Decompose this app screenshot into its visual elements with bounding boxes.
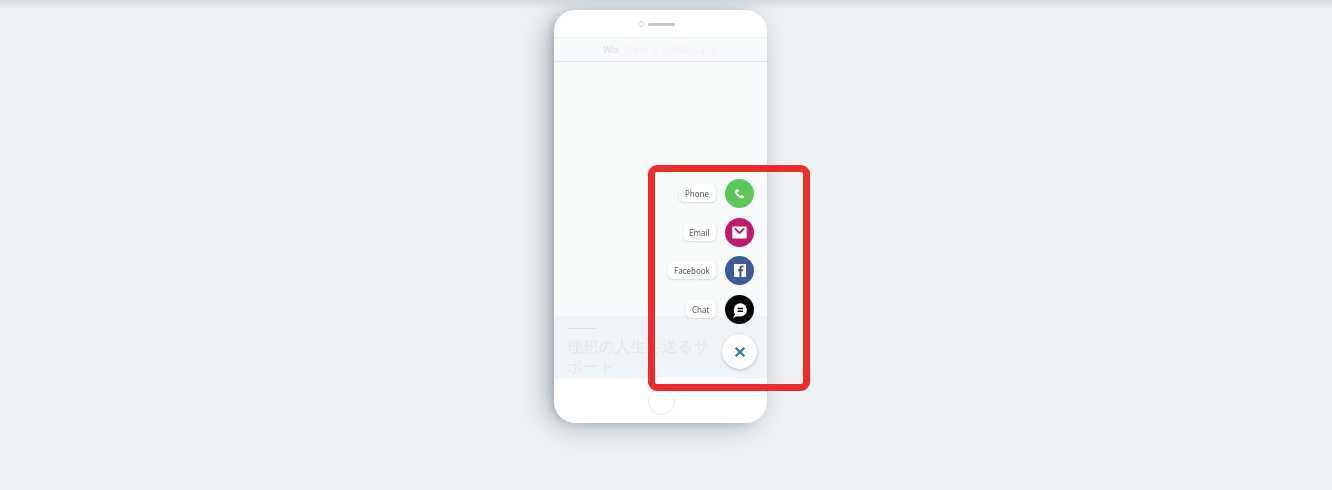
staticText: Wix でサイトを作成しよう <box>603 43 719 56</box>
button[interactable]: Chat <box>554 295 754 324</box>
button[interactable]: Close menu <box>722 334 757 369</box>
staticText: Phone <box>685 188 710 199</box>
staticText: Chat <box>692 304 710 315</box>
button[interactable]: Email <box>554 218 754 247</box>
button[interactable]: Facebook <box>554 256 754 285</box>
button[interactable]: Phone <box>554 179 754 208</box>
staticText: Email <box>689 227 710 238</box>
staticText: Facebook <box>674 265 710 276</box>
staticText: 理想の人生を送るサ ポート <box>567 337 710 377</box>
